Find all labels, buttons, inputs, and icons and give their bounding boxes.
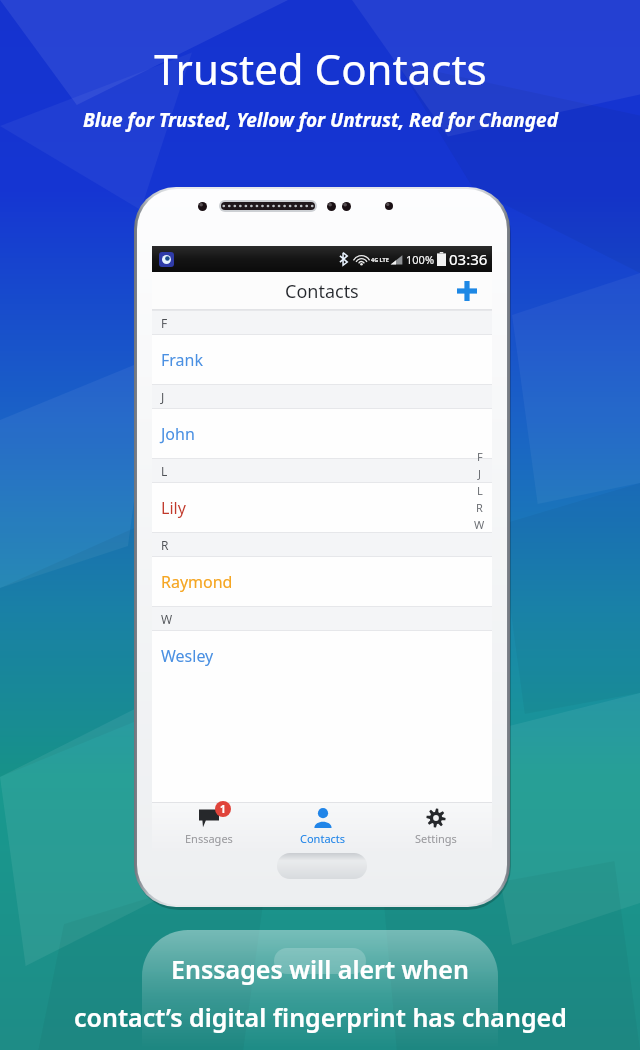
- staticText: 1: [220, 802, 226, 816]
- staticText: contact’s digital fingerprint has change…: [74, 1000, 567, 1034]
- staticText: Lily: [161, 497, 186, 519]
- staticText: R: [161, 537, 169, 553]
- button[interactable]: Add contact: [452, 276, 482, 306]
- staticText: Wesley: [161, 645, 214, 667]
- button[interactable]: Wesley: [152, 631, 492, 680]
- staticText: Contacts: [300, 831, 346, 846]
- button[interactable]: Raymond: [152, 557, 492, 606]
- button[interactable]: John: [152, 409, 492, 458]
- staticText: John: [161, 423, 195, 445]
- button[interactable]: Lily: [152, 483, 492, 532]
- button[interactable]: Settings: [379, 803, 492, 851]
- staticText: 100%: [406, 252, 435, 267]
- button[interactable]: Alphabet index: [474, 448, 485, 533]
- staticText: Trusted Contacts: [154, 40, 487, 97]
- staticText: Enssages will alert when: [171, 952, 469, 986]
- button[interactable]: Frank: [152, 335, 492, 384]
- button[interactable]: Home: [277, 853, 367, 879]
- staticText: Blue for Trusted, Yellow for Untrust, Re…: [83, 107, 558, 133]
- staticText: 4G LTE: [371, 256, 389, 263]
- staticText: F: [161, 315, 168, 331]
- button[interactable]: Contacts: [266, 803, 379, 851]
- staticText: W: [474, 517, 485, 532]
- staticText: L: [477, 483, 483, 498]
- staticText: W: [161, 611, 173, 627]
- staticText: Contacts: [285, 279, 359, 304]
- staticText: J: [478, 466, 482, 481]
- staticText: 03:36: [449, 249, 488, 269]
- staticText: F: [477, 449, 483, 464]
- staticText: Settings: [415, 831, 457, 846]
- staticText: Raymond: [161, 571, 233, 593]
- staticText: Frank: [161, 349, 204, 371]
- staticText: Enssages: [185, 831, 233, 846]
- staticText: L: [161, 463, 168, 479]
- button[interactable]: 1: [152, 803, 266, 851]
- staticText: R: [476, 500, 483, 515]
- staticText: J: [161, 389, 165, 405]
